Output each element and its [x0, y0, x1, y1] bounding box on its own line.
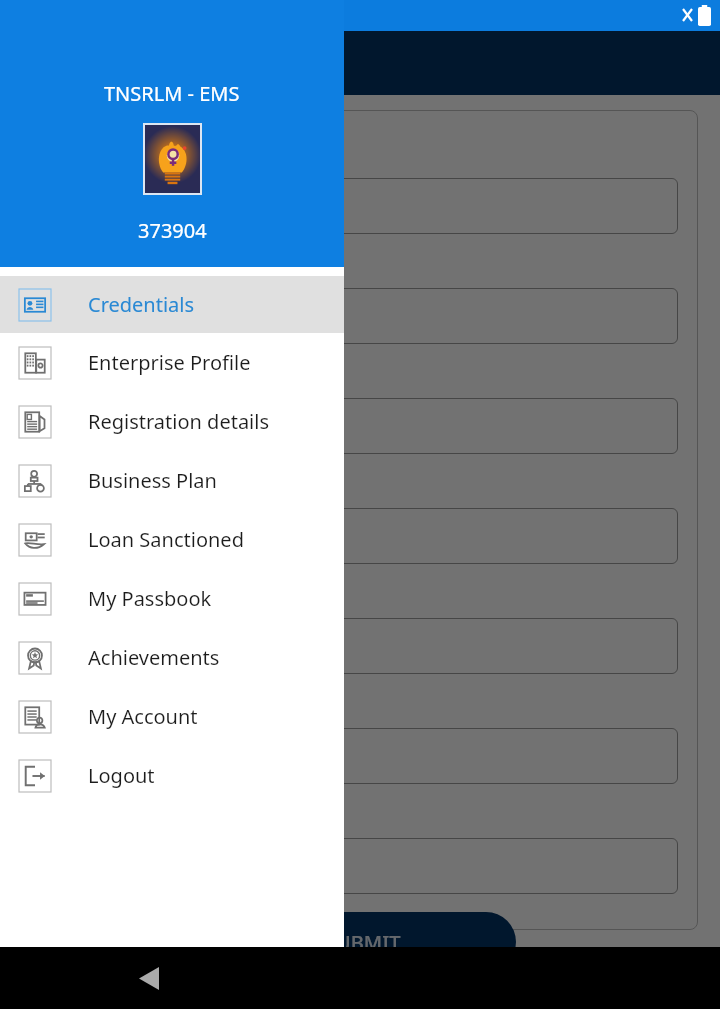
button[interactable]: Back: [118, 947, 180, 1009]
button[interactable]: My Account: [0, 687, 344, 746]
staticText: Credentials: [88, 291, 195, 318]
button[interactable]: Credentials: [0, 276, 344, 333]
button[interactable]: Logout: [0, 746, 344, 805]
staticText: Achievements: [88, 644, 220, 671]
staticText: Registration details: [88, 408, 270, 435]
staticText: 373904: [138, 217, 207, 244]
button[interactable]: Achievements: [0, 628, 344, 687]
staticText: TNSRLM - EMS: [104, 80, 240, 107]
button[interactable]: My Passbook: [0, 569, 344, 628]
staticText: My Account: [88, 703, 198, 730]
staticText: SUBMIT: [325, 929, 401, 956]
staticText: Business Plan: [88, 467, 217, 494]
staticText: Loan Sanctioned: [88, 526, 244, 553]
staticText: Enterprise Profile: [88, 349, 251, 376]
button[interactable]: Loan Sanctioned: [0, 510, 344, 569]
staticText: Logout: [88, 762, 155, 789]
button[interactable]: Registration details: [0, 392, 344, 451]
button[interactable]: SUBMIT: [210, 912, 516, 972]
staticText: My Passbook: [88, 585, 212, 612]
button[interactable]: Enterprise Profile: [0, 333, 344, 392]
button[interactable]: Business Plan: [0, 451, 344, 510]
